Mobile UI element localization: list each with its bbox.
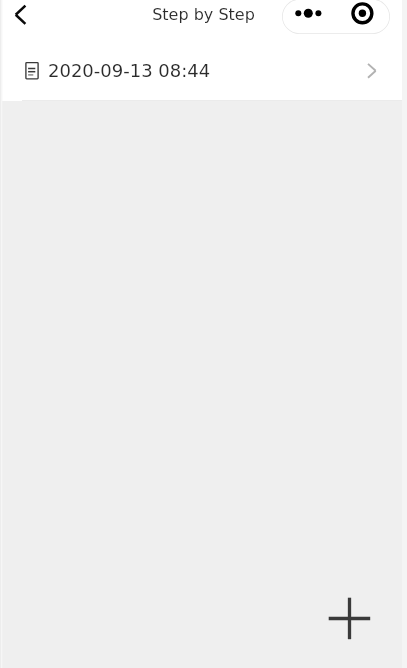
- button[interactable]: Add: [328, 597, 371, 640]
- staticText: Step by Step: [0, 5, 407, 24]
- button[interactable]: 2020-09-13 08:44: [0, 45, 407, 101]
- staticText: 2020-09-13 08:44: [48, 60, 211, 81]
- button[interactable]: Close mini program: [348, 0, 380, 29]
- button[interactable]: Back: [6, 0, 36, 30]
- button[interactable]: More options: [288, 0, 326, 29]
